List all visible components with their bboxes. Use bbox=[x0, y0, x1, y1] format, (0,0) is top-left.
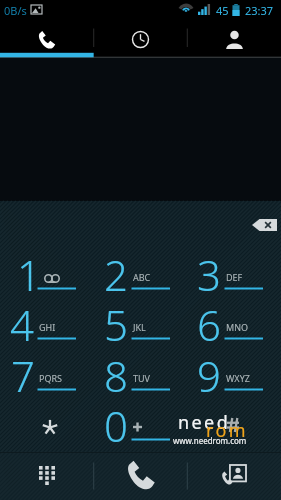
staticText: DEF bbox=[226, 271, 243, 283]
staticText: GHI bbox=[39, 321, 56, 333]
staticText: MNO bbox=[226, 321, 249, 333]
staticText: need bbox=[178, 410, 231, 435]
staticText: ABC bbox=[133, 271, 151, 283]
button[interactable]: 0 bbox=[94, 395, 188, 446]
staticText: 5 bbox=[104, 296, 128, 347]
staticText: JKL bbox=[133, 321, 146, 333]
staticText: 0B/s bbox=[4, 3, 27, 18]
staticText: 0 bbox=[104, 397, 128, 448]
button[interactable]: Contacts bbox=[187, 18, 281, 58]
staticText: www.needrom.com bbox=[173, 435, 247, 446]
button[interactable]: 4 bbox=[0, 294, 94, 345]
button[interactable]: Call bbox=[125, 459, 156, 490]
staticText: TUV bbox=[133, 372, 150, 384]
staticText: 2 bbox=[104, 246, 128, 297]
button[interactable]: Add to contacts bbox=[222, 465, 246, 485]
staticText: rom bbox=[206, 418, 248, 443]
button[interactable] bbox=[0, 395, 94, 446]
button[interactable]: 1 bbox=[0, 244, 94, 295]
staticText: PQRS bbox=[39, 372, 63, 384]
button[interactable]: 7 bbox=[0, 345, 94, 396]
button[interactable]: Dialpad bbox=[39, 466, 55, 485]
staticText: 4 bbox=[10, 296, 34, 347]
button[interactable]: 3 bbox=[187, 244, 281, 295]
button[interactable]: Phone bbox=[0, 18, 93, 58]
staticText: 1 bbox=[17, 246, 41, 297]
staticText: 3 bbox=[197, 246, 221, 297]
staticText: 23:37 bbox=[245, 3, 274, 18]
button[interactable]: 5 bbox=[94, 294, 188, 345]
staticText: 9 bbox=[197, 347, 221, 398]
button[interactable] bbox=[187, 395, 281, 446]
button[interactable]: 2 bbox=[94, 244, 188, 295]
button[interactable]: Recents bbox=[93, 18, 187, 58]
button[interactable]: 6 bbox=[187, 294, 281, 345]
button[interactable]: 9 bbox=[187, 345, 281, 396]
button[interactable]: Backspace bbox=[252, 219, 277, 231]
button[interactable]: 8 bbox=[94, 345, 188, 396]
staticText: 45 bbox=[216, 3, 229, 18]
staticText: WXYZ bbox=[226, 372, 250, 384]
staticText: 7 bbox=[11, 347, 35, 398]
staticText: 6 bbox=[197, 296, 221, 347]
staticText: 8 bbox=[104, 347, 128, 398]
